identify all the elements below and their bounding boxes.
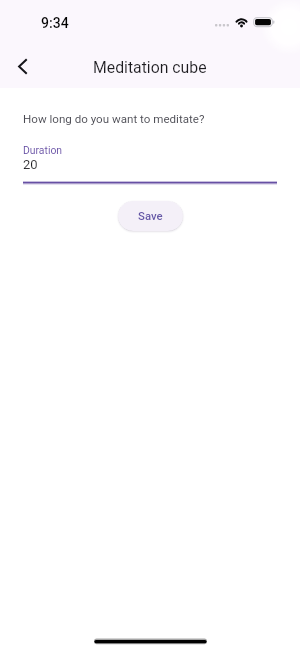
- button[interactable]: Duration: [23, 144, 277, 186]
- staticText: Save: [138, 209, 163, 222]
- staticText: 20: [23, 157, 38, 172]
- button[interactable]: Save: [118, 201, 183, 231]
- staticText: Duration: [23, 144, 63, 156]
- staticText: 9:34: [41, 15, 69, 31]
- button[interactable]: Back: [4, 48, 41, 85]
- staticText: Meditation cube: [93, 58, 207, 77]
- staticText: How long do you want to meditate?: [23, 112, 205, 126]
